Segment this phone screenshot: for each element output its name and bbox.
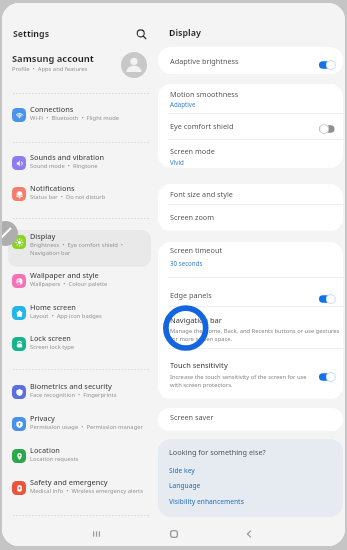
button[interactable]: Samsung account bbox=[12, 52, 117, 73]
button[interactable]: Sounds and vibration bbox=[8, 149, 151, 173]
staticText: 30 seconds bbox=[170, 259, 203, 267]
button[interactable]: Safety and emergency bbox=[8, 474, 151, 498]
button[interactable] bbox=[319, 124, 336, 134]
staticText: Settings bbox=[13, 28, 50, 40]
staticText: Increase the touch sensitivity of the sc… bbox=[170, 373, 307, 389]
staticText: Brightness • Eye comfort shield • Naviga… bbox=[30, 241, 124, 257]
button[interactable] bbox=[158, 280, 343, 309]
staticText: Sound mode • Ringtone bbox=[30, 162, 98, 170]
staticText: Location requests bbox=[30, 455, 79, 463]
button[interactable]: Recent apps bbox=[82, 520, 110, 546]
button[interactable]: Home screen bbox=[8, 299, 151, 323]
staticText: Profile • Apps and features bbox=[12, 65, 88, 73]
button[interactable] bbox=[158, 242, 343, 280]
staticText: Visibility enhancements bbox=[169, 497, 244, 506]
staticText: Connections bbox=[30, 104, 74, 114]
staticText: Display bbox=[169, 27, 201, 39]
staticText: Wi-Fi • Bluetooth • Flight mode bbox=[30, 114, 120, 122]
staticText: Adaptive bbox=[170, 100, 196, 108]
staticText: Permission usage • Permission manager bbox=[30, 423, 143, 431]
button[interactable] bbox=[158, 207, 343, 231]
staticText: Vivid bbox=[170, 158, 184, 166]
button[interactable]: Display bbox=[8, 228, 151, 260]
staticText: Privacy bbox=[30, 413, 55, 423]
button[interactable]: Back bbox=[235, 520, 263, 546]
staticText: Language bbox=[169, 481, 201, 490]
button[interactable] bbox=[158, 309, 343, 351]
button[interactable]: Visibility enhancements bbox=[169, 497, 244, 506]
button[interactable]: Home bbox=[160, 520, 188, 546]
button[interactable] bbox=[158, 84, 343, 116]
staticText: Screen lock type bbox=[30, 343, 75, 351]
button[interactable]: Biometrics and security bbox=[8, 378, 151, 402]
button[interactable] bbox=[158, 351, 343, 399]
button[interactable]: Notifications bbox=[8, 180, 151, 204]
staticText: Layout • App icon badges bbox=[30, 312, 102, 320]
staticText: Manage the Home, Back, and Recents butto… bbox=[170, 327, 340, 343]
button[interactable] bbox=[158, 408, 343, 431]
staticText: Location bbox=[30, 445, 60, 455]
staticText: Motion smoothness bbox=[170, 89, 239, 99]
staticText: Samsung account bbox=[12, 52, 94, 65]
button[interactable]: Side key bbox=[169, 466, 195, 475]
button[interactable] bbox=[319, 294, 336, 304]
staticText: Touch sensitivity bbox=[170, 360, 228, 370]
button[interactable]: Search bbox=[132, 25, 150, 43]
staticText: Looking for something else? bbox=[169, 447, 266, 457]
staticText: Face recognition • Fingerprints bbox=[30, 391, 117, 399]
staticText: Font size and style bbox=[170, 189, 233, 199]
button[interactable]: Language bbox=[169, 481, 201, 490]
staticText: Screen zoom bbox=[170, 212, 215, 222]
staticText: Home screen bbox=[30, 302, 76, 312]
staticText: Sounds and vibration bbox=[30, 152, 105, 162]
button[interactable]: Lock screen bbox=[8, 330, 151, 354]
staticText: Navigation bar bbox=[170, 315, 222, 325]
staticText: Status bar • Do not disturb bbox=[30, 193, 106, 201]
button[interactable]: Connections bbox=[8, 101, 151, 125]
button[interactable] bbox=[319, 372, 336, 382]
button[interactable]: Wallpaper and style bbox=[8, 267, 151, 291]
button[interactable]: Privacy bbox=[8, 410, 151, 434]
button[interactable] bbox=[158, 142, 343, 168]
staticText: Side key bbox=[169, 466, 195, 475]
staticText: Eye comfort shield bbox=[170, 121, 234, 131]
staticText: Wallpaper and style bbox=[30, 270, 99, 280]
staticText: Screen timeout bbox=[170, 245, 223, 255]
staticText: Lock screen bbox=[30, 333, 71, 343]
button[interactable]: Location bbox=[8, 442, 151, 466]
staticText: Adaptive brightness bbox=[170, 56, 239, 66]
staticText: Notifications bbox=[30, 183, 75, 193]
staticText: Biometrics and security bbox=[30, 381, 112, 391]
button[interactable] bbox=[158, 184, 343, 207]
button[interactable] bbox=[158, 47, 343, 74]
staticText: Screen saver bbox=[170, 412, 214, 422]
staticText: Edge panels bbox=[170, 290, 212, 300]
staticText: Medical info • Wireless emergency alerts bbox=[30, 487, 143, 495]
staticText: Display bbox=[30, 231, 56, 241]
button[interactable] bbox=[319, 60, 336, 70]
staticText: Wallpapers • Colour palette bbox=[30, 280, 108, 288]
button[interactable] bbox=[158, 116, 343, 142]
staticText: Screen mode bbox=[170, 146, 215, 156]
staticText: Safety and emergency bbox=[30, 477, 108, 487]
